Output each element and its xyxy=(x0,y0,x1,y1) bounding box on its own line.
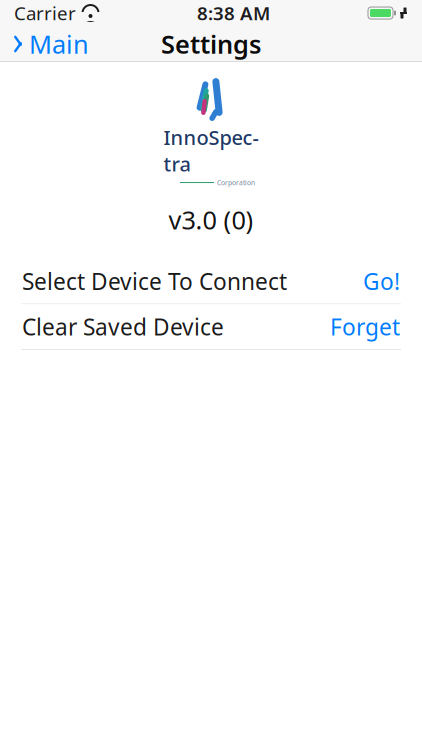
staticText: Carrier xyxy=(14,1,76,25)
staticText: v3.0 (0) xyxy=(168,203,253,237)
staticText: Settings xyxy=(161,27,261,61)
staticText: Clear Saved Device xyxy=(22,312,224,342)
staticText: Corporation xyxy=(217,178,255,187)
staticText: InnoSpectra xyxy=(163,124,258,177)
staticText: 8:38 AM xyxy=(197,1,270,25)
staticText: Forget xyxy=(330,312,400,342)
staticText: Go! xyxy=(363,266,400,296)
staticText: Select Device To Connect xyxy=(22,266,287,296)
staticText: Main xyxy=(29,27,89,61)
button[interactable]: Clear Saved Device xyxy=(0,304,422,349)
button[interactable]: Select Device To Connect xyxy=(0,259,422,304)
button[interactable]: Main xyxy=(0,26,101,62)
